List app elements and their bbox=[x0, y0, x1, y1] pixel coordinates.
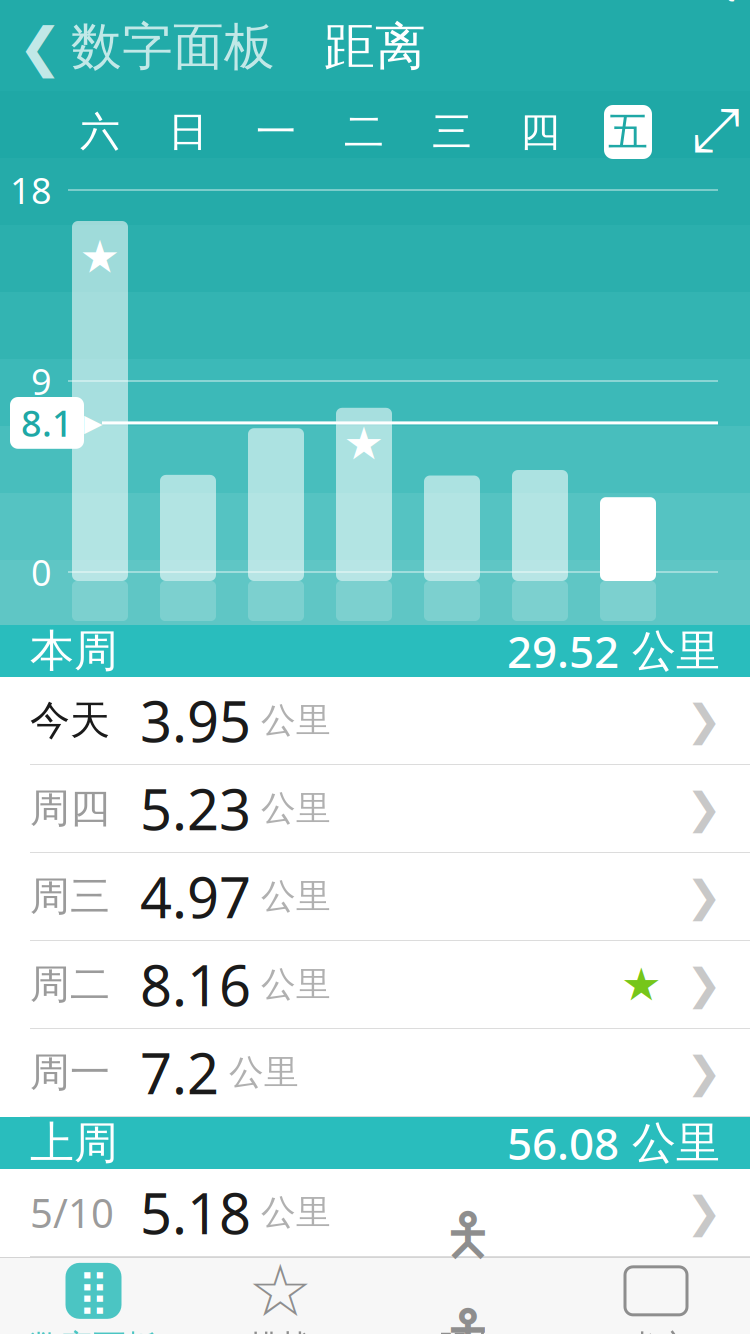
staticText: 公里 bbox=[251, 699, 331, 742]
staticText: ❯ bbox=[686, 784, 722, 833]
staticText: ❯ bbox=[686, 960, 722, 1009]
button[interactable]: Expand chart bbox=[688, 103, 744, 161]
staticText: 8.16 bbox=[140, 947, 251, 1022]
staticText: 账户 bbox=[624, 1327, 688, 1334]
staticText: 29.52 bbox=[507, 622, 619, 680]
staticText: 周三 bbox=[30, 872, 110, 921]
staticText: ⤢ bbox=[691, 102, 740, 162]
staticText: 上周 bbox=[30, 1116, 118, 1170]
staticText: 周一 bbox=[30, 1048, 110, 1097]
staticText: 7.2 bbox=[140, 1035, 219, 1110]
staticText: 日 bbox=[168, 107, 208, 156]
staticText: 五 bbox=[608, 107, 648, 156]
staticText: ★ bbox=[621, 959, 662, 1010]
staticText: 公里 bbox=[251, 787, 331, 830]
staticText: 5/10 bbox=[30, 1186, 114, 1239]
staticText: 4.97 bbox=[140, 859, 251, 934]
button[interactable]: 周四 bbox=[0, 765, 750, 853]
staticText: 18 bbox=[10, 166, 52, 214]
button[interactable]: ❮ bbox=[0, 8, 275, 86]
staticText: 数字面板 bbox=[29, 1327, 157, 1334]
staticText: 本周 bbox=[30, 624, 118, 678]
staticText: 3.95 bbox=[140, 683, 251, 758]
staticText: 公里 bbox=[251, 875, 331, 918]
staticText: 今天 bbox=[30, 696, 110, 745]
staticText: 挑战 bbox=[248, 1327, 312, 1334]
staticText: 距离 bbox=[324, 16, 426, 78]
staticText: ❮ bbox=[18, 17, 63, 77]
staticText: 公里 bbox=[219, 1051, 299, 1094]
staticText: 公里 bbox=[251, 1191, 331, 1234]
staticText: ▶ bbox=[84, 409, 102, 436]
staticText: ❯ bbox=[686, 696, 722, 745]
staticText: 数字面板 bbox=[71, 16, 275, 78]
button[interactable]: 今天 bbox=[0, 677, 750, 765]
staticText: 三 bbox=[432, 107, 472, 156]
staticText: ★ bbox=[79, 231, 120, 282]
button[interactable]: 🯅🯅 bbox=[374, 1258, 562, 1334]
staticText: 六 bbox=[80, 107, 120, 156]
staticText: 四 bbox=[520, 107, 560, 156]
staticText: 公里 bbox=[619, 1116, 720, 1170]
staticText: ❯ bbox=[686, 1048, 722, 1097]
staticText: 朋友 bbox=[436, 1327, 500, 1334]
button[interactable]: 周二 bbox=[0, 941, 750, 1029]
staticText: 周二 bbox=[30, 960, 110, 1009]
staticText: 0 bbox=[31, 548, 52, 596]
staticText: ☆ bbox=[248, 1250, 313, 1332]
staticText: ❯ bbox=[686, 1188, 722, 1237]
staticText: ⣿ bbox=[78, 1267, 109, 1315]
staticText: 一 bbox=[256, 107, 296, 156]
button[interactable]: ⣿ bbox=[0, 1258, 187, 1334]
staticText: 公里 bbox=[251, 963, 331, 1006]
staticText: 5.18 bbox=[140, 1175, 251, 1250]
staticText: 公里 bbox=[619, 624, 720, 678]
staticText: ❯ bbox=[686, 872, 722, 921]
staticText: 56.08 bbox=[507, 1114, 619, 1172]
button[interactable]: 账户 bbox=[562, 1258, 750, 1334]
staticText: 8.1 bbox=[21, 399, 73, 447]
staticText: 5.23 bbox=[140, 771, 251, 846]
staticText: ★ bbox=[343, 418, 384, 469]
button[interactable]: ☆ bbox=[187, 1258, 374, 1334]
button[interactable]: 五 bbox=[600, 103, 656, 161]
button[interactable]: 5/10 bbox=[0, 1169, 750, 1257]
staticText: 9 bbox=[31, 357, 52, 405]
staticText: ϟ bbox=[720, 0, 736, 2]
button[interactable]: 周一 bbox=[0, 1029, 750, 1117]
staticText: 🯅🯅 bbox=[442, 1194, 494, 1334]
button[interactable]: 周三 bbox=[0, 853, 750, 941]
staticText: 周四 bbox=[30, 784, 110, 833]
staticText: 二 bbox=[344, 107, 384, 156]
